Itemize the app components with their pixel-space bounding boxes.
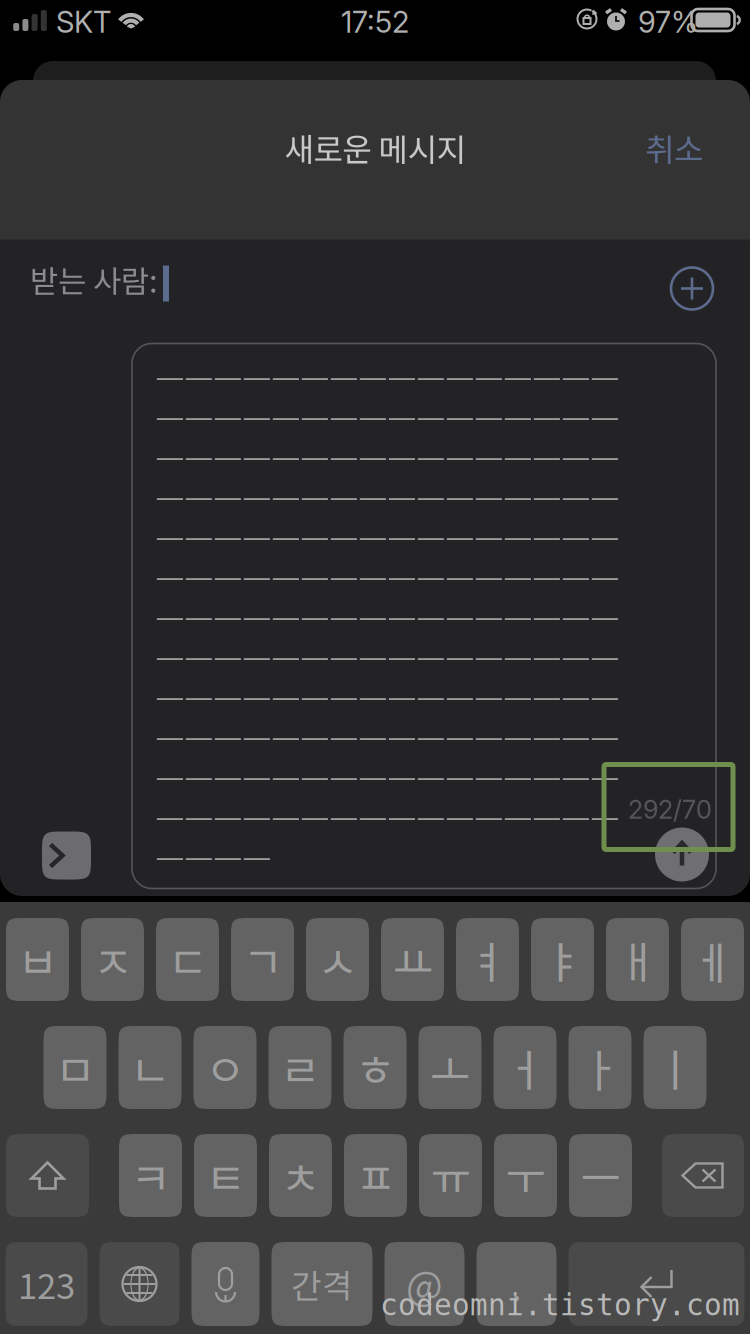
staticText: ㅡㅡㅡㅡㅡㅡㅡㅡㅡㅡㅡㅡㅡㅡㅡㅡ [155, 634, 619, 681]
staticText: 취소 [645, 124, 703, 171]
button[interactable]: ㅍ [344, 1134, 407, 1217]
staticText: @ [406, 1256, 443, 1312]
button[interactable]: ㄱ [231, 918, 294, 1001]
button[interactable]: ㅏ [568, 1026, 631, 1109]
staticText: . [511, 1256, 522, 1312]
button[interactable]: ㅋ [119, 1134, 182, 1217]
staticText: ㅔ [692, 928, 732, 991]
staticText: codeomni.tistory.com [380, 1288, 740, 1322]
staticText: ㅎ [355, 1036, 395, 1099]
button[interactable]: ㄷ [156, 918, 219, 1001]
staticText: ㄹ [280, 1036, 320, 1099]
button[interactable]: ㅛ [381, 918, 444, 1001]
staticText: 123 [18, 1259, 75, 1309]
staticText: ㅡㅡㅡㅡㅡㅡㅡㅡㅡㅡㅡㅡㅡㅡㅡㅡ [155, 354, 619, 401]
staticText: ㅑ [542, 928, 582, 991]
button[interactable]: Show more [42, 831, 91, 879]
staticText: ㅕ [467, 928, 507, 991]
staticText: ㄱ [242, 928, 282, 991]
staticText: ㅡㅡㅡㅡㅡㅡㅡㅡㅡㅡㅡㅡㅡㅡㅡㅡ [155, 474, 619, 521]
staticText: ㅁ [55, 1036, 95, 1099]
button[interactable]: Return [568, 1242, 744, 1326]
button[interactable]: ㅡ [569, 1134, 632, 1217]
staticText: ㄷ [167, 928, 207, 991]
staticText: ㅇ [205, 1036, 245, 1099]
button[interactable]: Next keyboard [99, 1242, 179, 1326]
staticText: ㅜ [505, 1144, 545, 1207]
staticText: ㅠ [430, 1144, 470, 1207]
staticText: ㅡㅡㅡㅡㅡㅡㅡㅡㅡㅡㅡㅡㅡㅡㅡㅡ [155, 434, 619, 481]
staticText: 292/70 [628, 794, 712, 825]
staticText: ㅡㅡㅡㅡ [155, 834, 271, 881]
button[interactable]: ㅕ [456, 918, 519, 1001]
button[interactable]: ㅓ [493, 1026, 556, 1109]
staticText: ㅓ [505, 1036, 545, 1099]
button[interactable]: ㅁ [43, 1026, 106, 1109]
staticText: 97% [638, 4, 698, 40]
staticText: ㅊ [280, 1144, 320, 1207]
staticText: ㅅ [317, 928, 357, 991]
button[interactable]: ㅗ [418, 1026, 481, 1109]
button[interactable]: ㄴ [118, 1026, 181, 1109]
staticText: ㅡㅡㅡㅡㅡㅡㅡㅡㅡㅡㅡㅡㅡㅡㅡㅡ [155, 394, 619, 441]
staticText: SKT [56, 4, 111, 40]
button[interactable]: 취소 [624, 112, 724, 182]
button[interactable]: ㅈ [81, 918, 144, 1001]
button[interactable]: ㄹ [268, 1026, 331, 1109]
staticText: ㄴ [130, 1036, 170, 1099]
button[interactable]: ㅅ [306, 918, 369, 1001]
button[interactable]: . [476, 1242, 556, 1326]
button[interactable]: Dictate [191, 1242, 259, 1326]
button[interactable]: Delete [662, 1134, 744, 1217]
button[interactable]: 123 [5, 1242, 87, 1326]
staticText: ㅡㅡㅡㅡㅡㅡㅡㅡㅡㅡㅡㅡㅡㅡㅡㅡ [155, 594, 619, 641]
staticText: ㅡㅡㅡㅡㅡㅡㅡㅡㅡㅡㅡㅡㅡㅡㅡㅡ [155, 754, 619, 801]
staticText: ㅛ [392, 928, 432, 991]
staticText: ㅐ [617, 928, 657, 991]
button[interactable]: ㅇ [193, 1026, 256, 1109]
staticText: 간격 [291, 1260, 353, 1308]
staticText: 17:52 [341, 4, 409, 40]
button[interactable]: ㅑ [531, 918, 594, 1001]
staticText: ㅡㅡㅡㅡㅡㅡㅡㅡㅡㅡㅡㅡㅡㅡㅡㅡ [155, 514, 619, 561]
button[interactable]: ㅂ [6, 918, 69, 1001]
button[interactable]: Shift [6, 1134, 89, 1217]
button[interactable]: ㅣ [643, 1026, 706, 1109]
staticText: ㅗ [430, 1036, 470, 1099]
staticText: ㅡㅡㅡㅡㅡㅡㅡㅡㅡㅡㅡㅡㅡㅡㅡㅡ [155, 714, 619, 761]
staticText: 받는 사람: [30, 257, 158, 302]
staticText: ㅡㅡㅡㅡㅡㅡㅡㅡㅡㅡㅡㅡㅡㅡㅡㅡ [155, 674, 619, 721]
button[interactable]: ㅐ [606, 918, 669, 1001]
staticText: ㅌ [205, 1144, 245, 1207]
staticText: ㅡㅡㅡㅡㅡㅡㅡㅡㅡㅡㅡㅡㅡㅡㅡㅡ [155, 794, 619, 841]
button[interactable]: ㅊ [269, 1134, 332, 1217]
staticText: ㅍ [355, 1144, 395, 1207]
staticText: ㅡㅡㅡㅡㅡㅡㅡㅡㅡㅡㅡㅡㅡㅡㅡㅡ [155, 554, 619, 601]
button[interactable]: ㅔ [681, 918, 744, 1001]
button[interactable]: Add contact [670, 266, 714, 310]
button[interactable]: 간격 [271, 1242, 372, 1326]
staticText: ㅈ [92, 928, 132, 991]
staticText: ㅣ [655, 1036, 695, 1099]
staticText: ㅋ [130, 1144, 170, 1207]
button[interactable]: ㅎ [343, 1026, 406, 1109]
button[interactable]: ㅠ [419, 1134, 482, 1217]
button[interactable]: ㅌ [194, 1134, 257, 1217]
button[interactable]: ㅜ [494, 1134, 557, 1217]
staticText: ㅏ [580, 1036, 620, 1099]
button[interactable]: Send [655, 827, 709, 881]
staticText: ㅂ [17, 928, 57, 991]
button[interactable]: @ [384, 1242, 464, 1326]
staticText: ㅡ [580, 1144, 620, 1207]
staticText: 새로운 메시지 [284, 124, 465, 171]
